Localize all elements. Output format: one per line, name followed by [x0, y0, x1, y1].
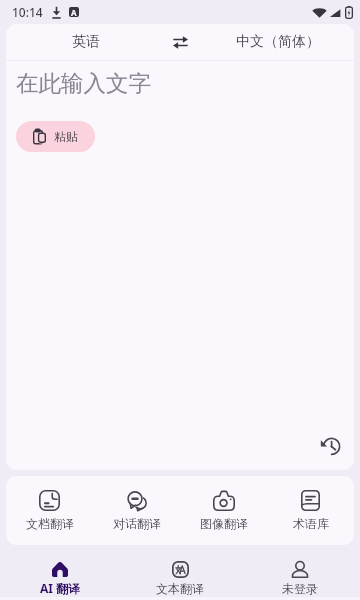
staticText: 图像翻译 [200, 516, 248, 531]
staticText: 对话翻译 [113, 516, 161, 531]
button[interactable]: 图像翻译 [180, 476, 267, 545]
staticText: A [71, 7, 77, 17]
staticText: 文档翻译 [26, 516, 74, 531]
staticText: 未登录 [282, 581, 318, 596]
staticText: AI 翻译 [40, 580, 81, 596]
button[interactable]: 文档翻译 [6, 476, 93, 545]
button[interactable]: AI 翻译 [0, 549, 120, 600]
staticText: 10:14 [12, 4, 43, 20]
button[interactable]: 术语库 [267, 476, 354, 545]
button[interactable]: 英语 [6, 24, 158, 60]
staticText: 中文（简体） [236, 33, 320, 51]
button[interactable]: 文本翻译 [120, 549, 240, 600]
button[interactable]: 未登录 [240, 549, 360, 600]
staticText: 英语 [72, 33, 100, 51]
button[interactable]: 粘贴 [16, 121, 95, 152]
button[interactable]: History [315, 431, 345, 461]
staticText: 粘贴 [54, 129, 78, 144]
button[interactable]: Swap languages [158, 24, 202, 60]
staticText: 术语库 [293, 516, 329, 531]
button[interactable]: 中文（简体） [202, 24, 354, 60]
staticText: 文本翻译 [156, 581, 204, 596]
button[interactable]: 对话翻译 [93, 476, 180, 545]
staticText: 在此输入文字 [16, 69, 151, 97]
